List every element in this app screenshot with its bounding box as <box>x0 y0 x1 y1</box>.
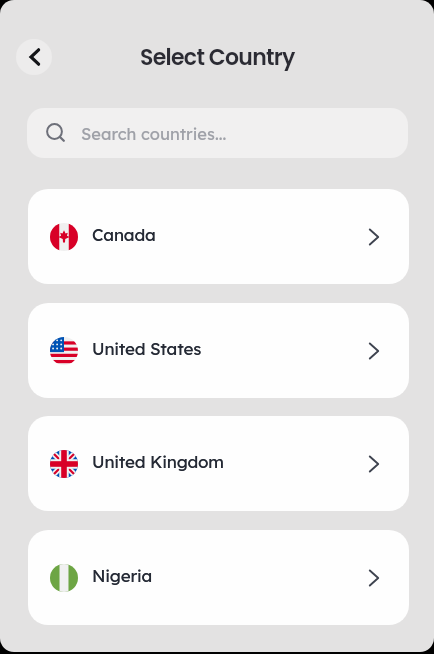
staticText: Nigeria <box>92 565 153 586</box>
button[interactable]: Nigeria <box>28 530 409 625</box>
button[interactable] <box>16 39 52 75</box>
staticText: Search countries... <box>81 123 227 144</box>
button[interactable]: Search countries... <box>27 108 408 158</box>
staticText: Canada <box>92 224 156 245</box>
staticText: Canada <box>92 224 156 245</box>
staticText: United States <box>92 338 202 359</box>
staticText: Nigeria <box>92 565 153 586</box>
button[interactable]: United Kingdom <box>28 416 409 511</box>
staticText: United States <box>92 338 202 359</box>
button[interactable]: United States <box>28 303 409 398</box>
staticText: Select Country <box>140 42 295 73</box>
staticText: United Kingdom <box>92 451 224 472</box>
button[interactable]: Canada <box>28 189 409 284</box>
staticText: United Kingdom <box>92 451 224 472</box>
